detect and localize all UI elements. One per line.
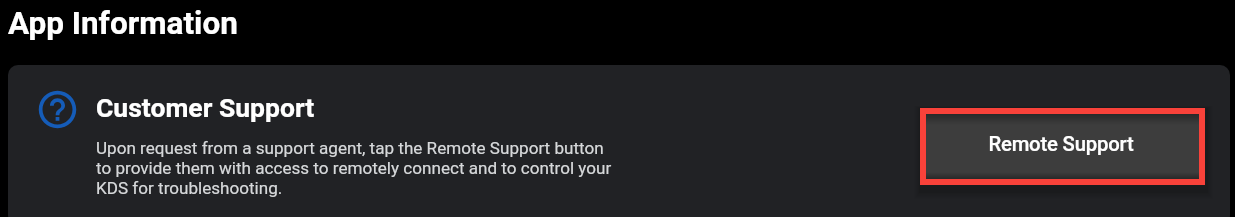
staticText: Remote Support — [988, 132, 1134, 156]
staticText: Customer Support — [96, 92, 315, 123]
button[interactable]: Remote Support — [920, 108, 1205, 185]
staticText: App Information — [8, 5, 238, 42]
staticText: Upon request from a support agent, tap t… — [96, 138, 619, 198]
other: Help — [35, 87, 80, 132]
